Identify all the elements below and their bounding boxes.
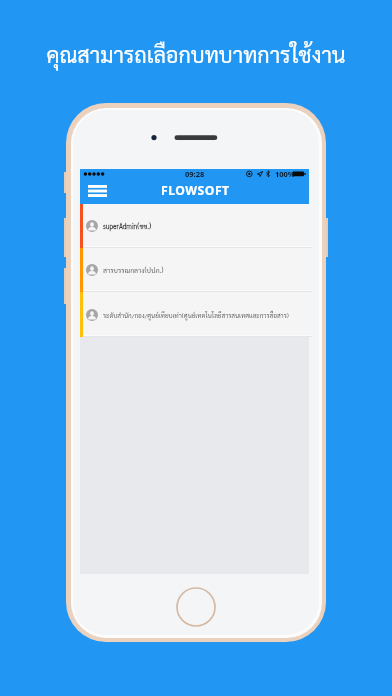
staticText: 100% — [275, 169, 295, 179]
button[interactable]: Home — [176, 587, 216, 627]
staticText: ระดับสำนัก/กอง/ศูนย์เทียบเท่า(ศูนย์เทคโน… — [103, 311, 289, 319]
staticText: คุณสามารถเลือกบทบาทการใช้งาน — [0, 40, 392, 68]
button[interactable]: สารบรรณกลาง(ปปภ.) — [80, 248, 309, 292]
staticText: สารบรรณกลาง(ปปภ.) — [103, 266, 164, 275]
staticText: 09:28 — [185, 169, 205, 179]
staticText: superAdmin(ขข.) — [103, 222, 152, 231]
button[interactable]: Menu — [83, 179, 111, 202]
button[interactable]: ระดับสำนัก/กอง/ศูนย์เทียบเท่า(ศูนย์เทคโน… — [80, 292, 309, 337]
button[interactable]: superAdmin(ขข.) — [80, 204, 309, 248]
staticText: FLOWSOFT — [161, 182, 230, 199]
